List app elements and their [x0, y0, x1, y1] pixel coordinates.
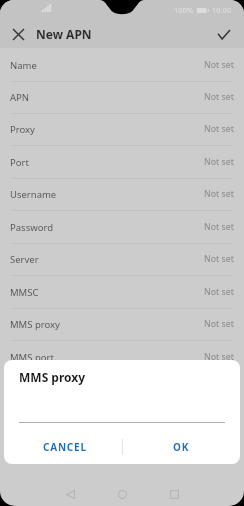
staticText: MMS proxy	[10, 318, 60, 331]
staticText: Not set	[204, 351, 234, 363]
staticText: OK	[173, 440, 190, 454]
staticText: New APN	[36, 26, 92, 42]
staticText: Not set	[204, 91, 234, 103]
staticText: 10:00	[212, 5, 232, 15]
button[interactable]: Password	[0, 212, 244, 244]
button[interactable]: Username	[0, 179, 244, 211]
staticText: Proxy	[10, 123, 35, 136]
staticText: CANCEL	[43, 440, 87, 454]
staticText: Not set	[204, 156, 234, 168]
staticText: Not set	[204, 123, 234, 135]
button[interactable]: Port	[0, 147, 244, 179]
staticText: Not set	[204, 415, 234, 427]
button[interactable]: APN	[0, 82, 244, 114]
button[interactable]: MMSC	[0, 277, 244, 309]
staticText: Not set	[204, 253, 234, 265]
staticText: Name	[10, 59, 37, 72]
staticText: Server	[10, 253, 39, 266]
staticText: Not set	[204, 59, 234, 71]
staticText: Port	[10, 156, 29, 169]
button[interactable]: MNC	[0, 406, 244, 438]
staticText: APN	[10, 91, 30, 104]
button[interactable]: MCC	[0, 374, 244, 406]
staticText: MMS proxy	[19, 369, 86, 385]
button[interactable]: Save	[206, 16, 242, 52]
button[interactable]: Home	[108, 480, 136, 506]
button[interactable]: Recents	[160, 480, 188, 506]
button[interactable]: Back	[56, 480, 84, 506]
staticText: MNC	[10, 415, 32, 428]
staticText: Not set	[204, 286, 234, 298]
button[interactable]: Server	[0, 244, 244, 276]
button[interactable]: MMS proxy	[0, 309, 244, 341]
staticText: MMS port	[10, 351, 54, 364]
button[interactable]: Name	[0, 50, 244, 82]
staticText: Not set	[204, 221, 234, 233]
staticText: Not set	[204, 188, 234, 200]
staticText: Password	[10, 221, 53, 234]
button[interactable]: MMS port	[0, 342, 244, 374]
button[interactable]: OK	[122, 426, 240, 464]
button[interactable]: CANCEL	[4, 426, 122, 464]
button[interactable]: Proxy	[0, 114, 244, 146]
staticText: MMSC	[10, 286, 39, 299]
button[interactable]: Close	[0, 16, 36, 52]
staticText: Not set	[204, 318, 234, 330]
staticText: Username	[10, 188, 57, 201]
staticText: 100%	[174, 5, 194, 15]
